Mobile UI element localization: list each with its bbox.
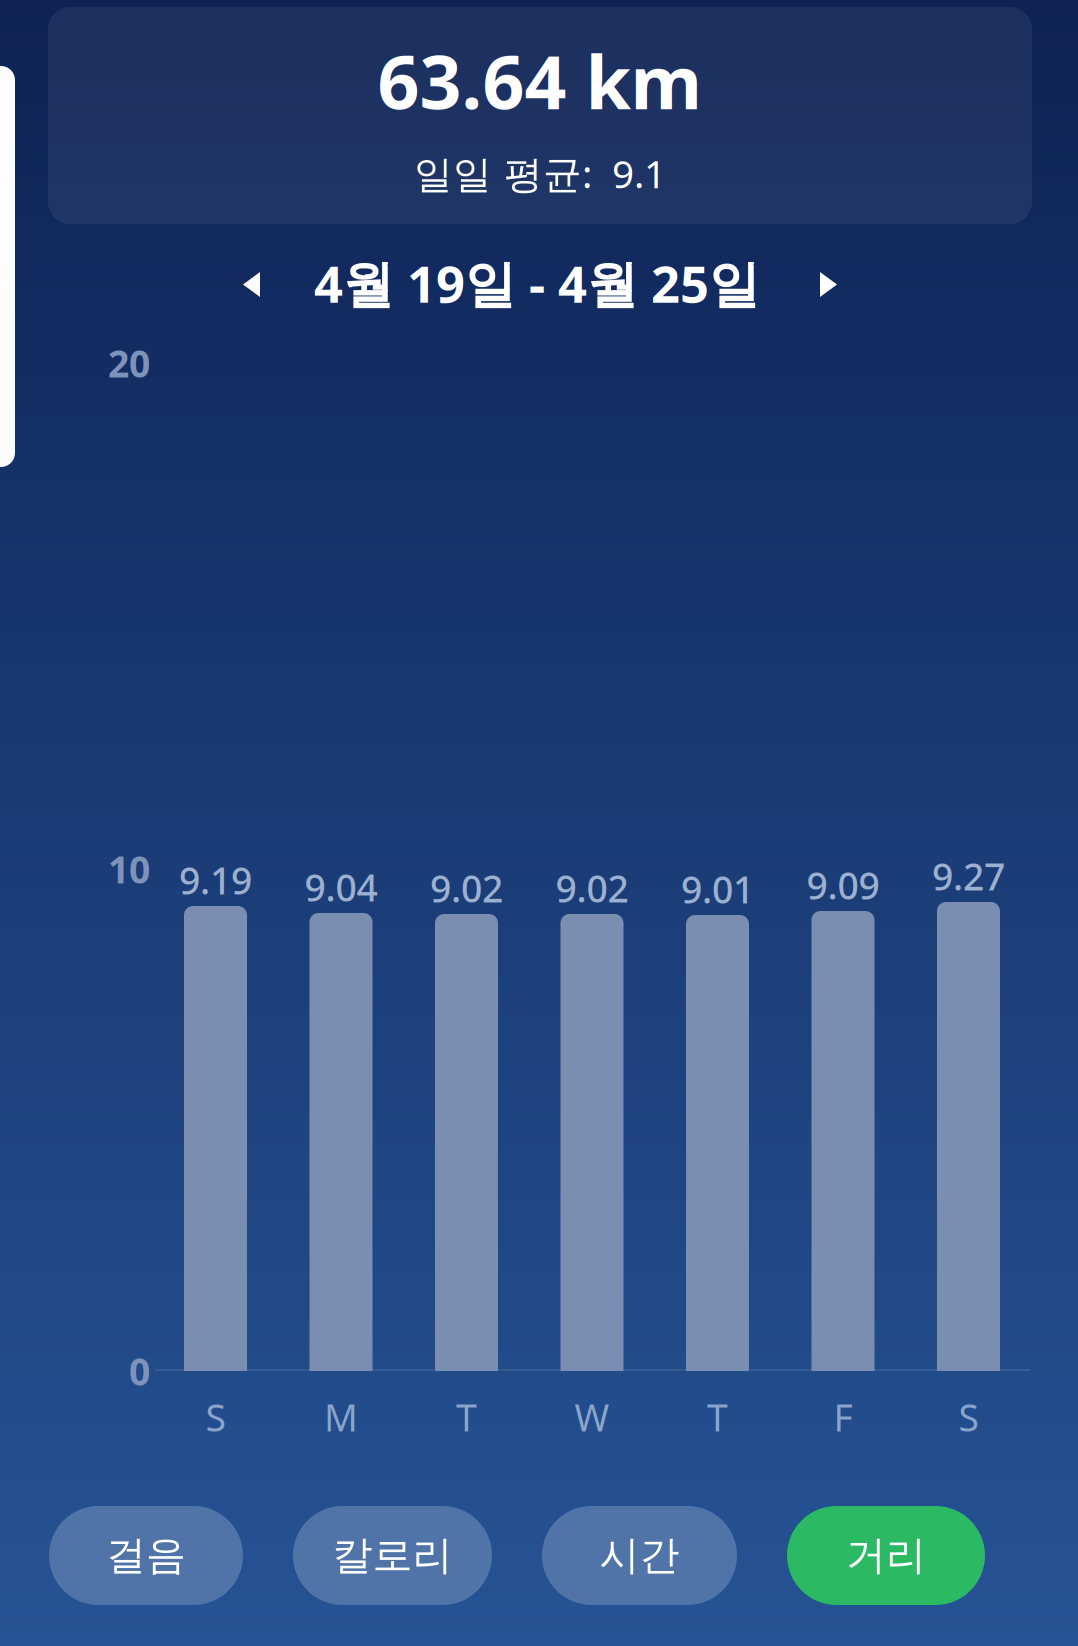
button[interactable]: 다음 주 bbox=[798, 250, 859, 319]
staticText: 9.27 bbox=[932, 851, 1005, 901]
button[interactable]: 거리 bbox=[787, 1506, 985, 1605]
button[interactable]: 이전 주 bbox=[221, 250, 282, 319]
staticText: 9.02 bbox=[555, 863, 628, 913]
staticText: 9.09 bbox=[806, 860, 879, 910]
button[interactable]: 걸음 bbox=[49, 1506, 243, 1605]
staticText: 0 bbox=[129, 1346, 150, 1396]
staticText: F bbox=[833, 1392, 852, 1442]
staticText: 시간 bbox=[599, 1531, 679, 1580]
staticText: 걸음 bbox=[106, 1531, 186, 1580]
button[interactable]: 시간 bbox=[542, 1506, 737, 1605]
staticText: 9.19 bbox=[179, 855, 252, 905]
staticText: M bbox=[324, 1392, 358, 1442]
staticText: 10 bbox=[108, 844, 150, 894]
staticText: 63.64 km bbox=[377, 32, 702, 129]
staticText: 9.02 bbox=[430, 863, 503, 913]
staticText: 4월 19일 - 4월 25일 bbox=[314, 249, 760, 317]
staticText: 9.01 bbox=[681, 864, 754, 914]
staticText: S bbox=[205, 1392, 225, 1442]
staticText: 일일 평균: 9.1 bbox=[414, 147, 666, 199]
button[interactable]: 칼로리 bbox=[293, 1506, 492, 1605]
staticText: 칼로리 bbox=[332, 1531, 452, 1580]
staticText: S bbox=[958, 1392, 978, 1442]
staticText: 거리 bbox=[846, 1531, 926, 1580]
staticText: 20 bbox=[108, 338, 150, 388]
staticText: T bbox=[707, 1392, 728, 1442]
staticText: 9.04 bbox=[304, 862, 377, 912]
staticText: W bbox=[574, 1392, 609, 1442]
staticText: T bbox=[456, 1392, 477, 1442]
